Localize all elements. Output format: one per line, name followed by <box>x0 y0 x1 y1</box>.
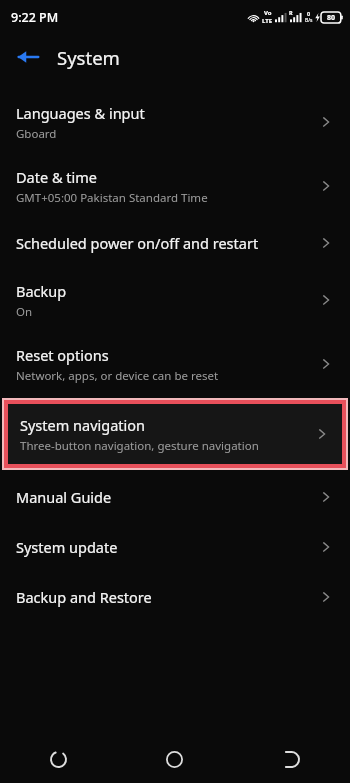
button[interactable]: Home <box>116 735 233 783</box>
staticText: Vo <box>264 9 272 17</box>
staticText: Scheduled power on/off and restart <box>16 233 259 253</box>
staticText: Languages & input <box>16 103 145 123</box>
staticText: B/s <box>305 17 313 24</box>
staticText: Date & time <box>16 167 97 187</box>
button[interactable]: Back <box>8 37 48 77</box>
staticText: R <box>289 9 293 16</box>
staticText: System <box>57 45 120 70</box>
staticText: 9:22 PM <box>11 9 59 26</box>
staticText: System update <box>16 537 118 557</box>
button[interactable]: Recents <box>0 735 116 783</box>
button[interactable]: System update <box>0 522 350 572</box>
button[interactable]: Manual Guide <box>0 472 350 522</box>
staticText: Three-button navigation, gesture navigat… <box>20 438 259 454</box>
staticText: On <box>16 304 33 320</box>
button[interactable]: Scheduled power on/off and restart <box>0 218 350 268</box>
button[interactable]: Date & time <box>0 154 350 218</box>
staticText: Reset options <box>16 345 109 365</box>
staticText: 0 <box>307 10 311 17</box>
button[interactable]: Backup and Restore <box>0 572 350 622</box>
staticText: Network, apps, or device can be reset <box>16 368 219 384</box>
staticText: Backup and Restore <box>16 587 152 607</box>
staticText: 80 <box>327 13 336 23</box>
staticText: Backup <box>16 281 67 301</box>
staticText: Gboard <box>16 126 57 142</box>
staticText: LTE <box>262 17 273 25</box>
staticText: System navigation <box>20 415 146 435</box>
button[interactable]: System navigation <box>8 404 342 464</box>
button[interactable]: Languages & input <box>0 90 350 154</box>
staticText: Manual Guide <box>16 487 112 507</box>
button[interactable]: Reset options <box>0 332 350 396</box>
button[interactable]: Backup <box>0 268 350 332</box>
staticText: GMT+05:00 Pakistan Standard Time <box>16 190 208 206</box>
button[interactable]: Back <box>233 735 350 783</box>
